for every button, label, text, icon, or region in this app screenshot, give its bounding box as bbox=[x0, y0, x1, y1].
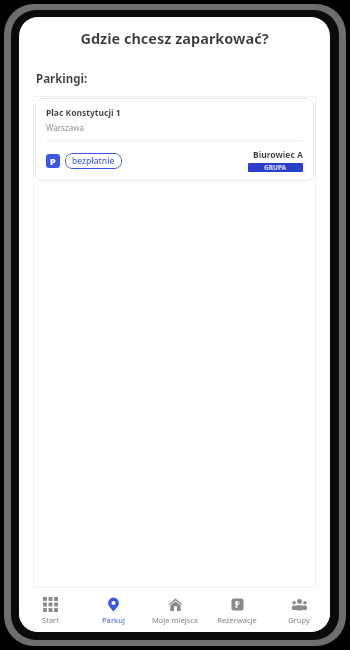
button[interactable]: Grupy bbox=[268, 590, 330, 632]
button[interactable]: Rezerwacje bbox=[206, 590, 268, 632]
staticText: P bbox=[50, 155, 56, 167]
staticText: GRUPA bbox=[264, 163, 287, 172]
button[interactable]: Plac Konstytucji 1 bbox=[35, 98, 314, 181]
staticText: Warszawa bbox=[46, 122, 84, 133]
staticText: Parkingi: bbox=[36, 71, 88, 87]
staticText: bezpłatnie bbox=[72, 155, 115, 167]
staticText: Biurowiec A bbox=[253, 149, 303, 161]
button[interactable]: Start bbox=[19, 590, 82, 632]
button[interactable]: Parkuj bbox=[82, 590, 144, 632]
staticText: Grupy bbox=[288, 615, 310, 625]
staticText: Moje miejsca bbox=[152, 615, 198, 625]
button[interactable]: Moje miejsca bbox=[144, 590, 206, 632]
staticText: Rezerwacje bbox=[217, 615, 257, 625]
staticText: Plac Konstytucji 1 bbox=[46, 107, 121, 119]
staticText: Start bbox=[42, 615, 59, 625]
staticText: Gdzie chcesz zaparkować? bbox=[80, 28, 269, 48]
staticText: Parkuj bbox=[102, 615, 125, 625]
